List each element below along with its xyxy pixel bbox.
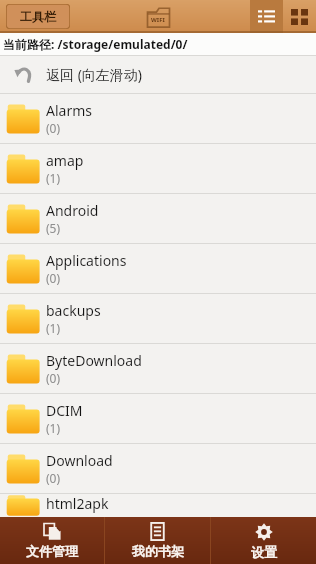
staticText: backups	[46, 301, 101, 320]
staticText: WIFI	[151, 16, 165, 24]
staticText: (0)	[46, 120, 61, 136]
staticText: html2apk	[46, 494, 109, 513]
button[interactable]: Android	[0, 194, 316, 243]
button[interactable]: amap	[0, 144, 316, 193]
staticText: 设置	[251, 544, 277, 560]
button[interactable]: 设置	[211, 517, 316, 564]
button[interactable]: 工具栏	[6, 4, 70, 29]
staticText: Applications	[46, 251, 127, 270]
staticText: 返回 (向左滑动)	[46, 65, 143, 84]
button[interactable]: WIFI 共享	[142, 3, 174, 31]
button[interactable]: backups	[0, 294, 316, 343]
button[interactable]: Download	[0, 444, 316, 493]
button[interactable]: 我的书架	[105, 517, 210, 564]
staticText: (0)	[46, 370, 61, 386]
staticText: (1)	[46, 320, 61, 336]
button[interactable]: DCIM	[0, 394, 316, 443]
button[interactable]: 网格视图	[283, 0, 316, 33]
button[interactable]: html2apk	[0, 494, 316, 517]
button[interactable]: ByteDownload	[0, 344, 316, 393]
staticText: 我的书架	[132, 543, 184, 559]
staticText: 工具栏	[20, 9, 56, 24]
button[interactable]: 文件管理	[0, 517, 104, 564]
staticText: (0)	[46, 270, 61, 286]
staticText: Android	[46, 201, 99, 220]
staticText: Download	[46, 451, 113, 470]
button[interactable]: Applications	[0, 244, 316, 293]
staticText: 文件管理	[26, 543, 78, 559]
staticText: (1)	[46, 420, 61, 436]
staticText: Alarms	[46, 101, 92, 120]
staticText: DCIM	[46, 401, 83, 420]
button[interactable]: 列表视图	[250, 0, 283, 33]
staticText: amap	[46, 151, 84, 170]
staticText: (5)	[46, 220, 61, 236]
staticText: (1)	[46, 170, 61, 186]
staticText: 当前路径: /storage/emulated/0/	[3, 36, 188, 52]
staticText: (0)	[46, 470, 61, 486]
staticText: ByteDownload	[46, 351, 142, 370]
button[interactable]: 返回 (向左滑动)	[0, 56, 316, 93]
button[interactable]: Alarms	[0, 94, 316, 143]
